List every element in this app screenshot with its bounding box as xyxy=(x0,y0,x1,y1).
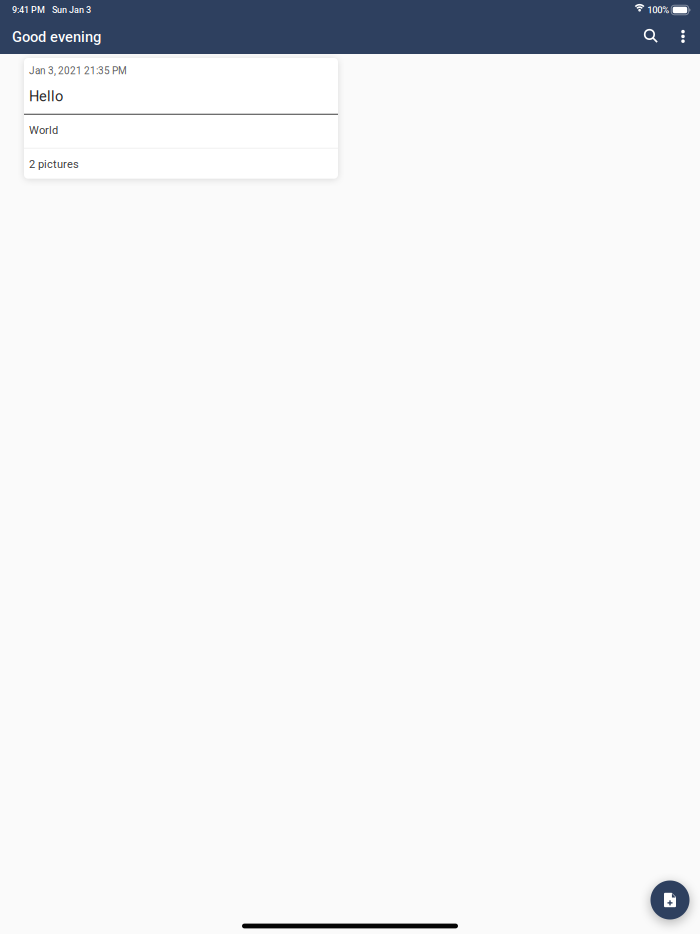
button[interactable]: New note xyxy=(650,880,689,919)
staticText: 2 pictures xyxy=(29,158,79,171)
button[interactable]: Search xyxy=(630,20,666,54)
staticText: 100% xyxy=(647,4,669,16)
staticText: Jan 3, 2021 21:35 PM xyxy=(29,65,127,77)
button[interactable]: More options xyxy=(666,20,700,54)
staticText: Good evening xyxy=(12,28,101,46)
staticText: Sun Jan 3 xyxy=(52,5,91,15)
staticText: World xyxy=(29,124,58,137)
button[interactable]: 2 pictures xyxy=(24,149,338,179)
button[interactable]: World xyxy=(24,115,338,148)
button[interactable]: Jan 3, 2021 21:35 PM xyxy=(24,58,338,114)
staticText: Hello xyxy=(29,88,63,105)
staticText: 9:41 PM xyxy=(12,5,45,15)
